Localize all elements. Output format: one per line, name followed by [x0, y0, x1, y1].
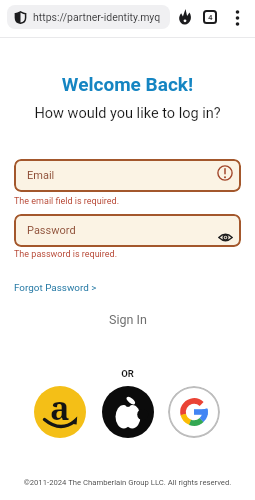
button[interactable]: 4 — [203, 10, 217, 24]
button[interactable] — [177, 8, 193, 26]
button[interactable]: a — [34, 386, 86, 438]
staticText: Password — [27, 224, 76, 237]
button[interactable]: Password — [14, 214, 241, 247]
staticText: Sign In — [109, 312, 147, 327]
staticText: The password is required. — [14, 249, 117, 260]
button[interactable] — [168, 386, 220, 438]
button[interactable] — [102, 386, 154, 438]
staticText: ©2011-2024 The Chamberlain Group LLC. Al… — [0, 478, 255, 487]
staticText: Forgot Password > — [14, 282, 97, 294]
staticText: a — [50, 386, 70, 430]
staticText: 4 — [208, 13, 213, 22]
button[interactable]: Forgot Password > — [14, 282, 97, 294]
staticText: Welcome Back! — [0, 73, 255, 95]
button[interactable]: Sign In — [0, 306, 255, 332]
button[interactable] — [231, 5, 244, 30]
button[interactable]: Email — [14, 159, 241, 192]
staticText: https://partner-identity.myq — [33, 11, 161, 23]
button[interactable]: https://partner-identity.myq — [7, 5, 170, 29]
staticText: How would you like to log in? — [0, 105, 255, 122]
staticText: Email — [27, 169, 55, 182]
staticText: The email field is required. — [14, 196, 120, 207]
staticText: OR — [0, 368, 255, 379]
